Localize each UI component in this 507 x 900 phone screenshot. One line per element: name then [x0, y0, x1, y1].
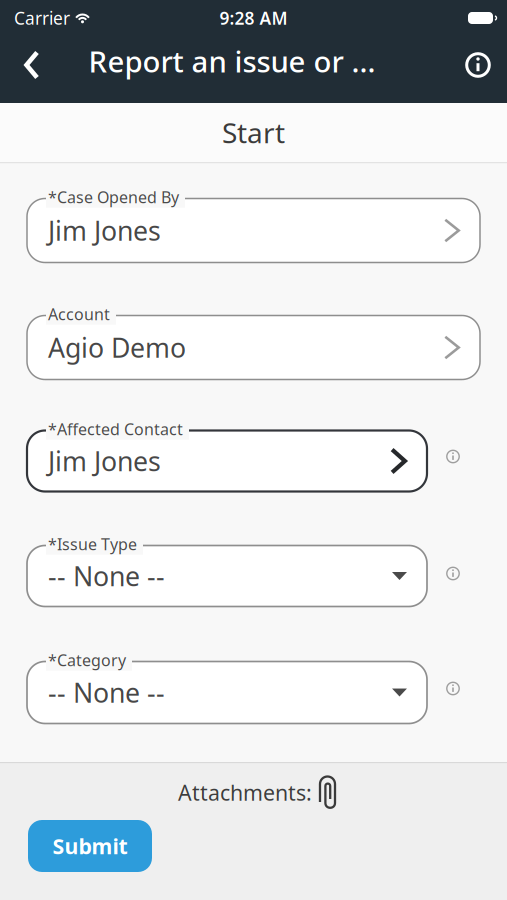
staticText: Report an issue or ... — [88, 41, 375, 80]
button[interactable]: Back — [16, 42, 48, 88]
staticText: Carrier — [14, 6, 70, 29]
staticText: -- None -- — [48, 675, 165, 710]
button[interactable]: -- None -- — [27, 653, 427, 723]
staticText: Attachments: — [178, 778, 312, 807]
button[interactable]: Jim Jones — [27, 190, 480, 262]
staticText: *Category — [48, 649, 126, 671]
button[interactable]: Affected Contact info — [442, 445, 464, 467]
staticText: -- None -- — [48, 558, 165, 594]
staticText: *Case Opened By — [48, 186, 179, 208]
button[interactable]: Info — [459, 46, 497, 84]
button[interactable]: -- None -- — [27, 537, 427, 606]
staticText: *Affected Contact — [48, 418, 183, 440]
button[interactable]: Issue Type info — [442, 562, 464, 584]
button[interactable]: Category info — [442, 677, 464, 699]
button[interactable]: Attachments — [178, 776, 337, 809]
staticText: Start — [222, 114, 285, 151]
staticText: Jim Jones — [48, 213, 161, 248]
button[interactable]: Submit — [28, 820, 152, 872]
staticText: Agio Demo — [48, 330, 186, 365]
button[interactable]: Jim Jones — [27, 422, 427, 491]
staticText: Jim Jones — [48, 443, 161, 479]
staticText: Account — [48, 303, 110, 325]
staticText: *Issue Type — [48, 533, 137, 555]
button[interactable]: Agio Demo — [27, 307, 480, 379]
staticText: 9:28 AM — [219, 6, 287, 29]
staticText: Submit — [52, 832, 127, 860]
